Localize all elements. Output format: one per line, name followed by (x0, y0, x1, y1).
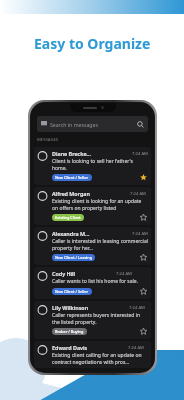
staticText: Search in messages (50, 121, 98, 128)
button[interactable]: Star message (139, 287, 148, 296)
button[interactable]: Search in messages (37, 116, 148, 132)
staticText: MESSAGES (37, 137, 59, 143)
staticText: Cody Hill (52, 270, 76, 277)
button[interactable]: Diane Breckenridge (34, 147, 151, 185)
other: Search (137, 121, 144, 128)
staticText: Diane Breckenridge (52, 150, 92, 157)
staticText: Existing client calling for an update on… (52, 352, 148, 365)
staticText: 7:24 AM (132, 231, 148, 237)
staticText: 7:24 AM (132, 151, 148, 157)
staticText: Broker / Buying (55, 329, 84, 334)
staticText: 7:24 AM (129, 305, 145, 311)
staticText: Caller represents buyers interested in t… (52, 312, 148, 325)
staticText: Lily Wilkinson (52, 304, 89, 311)
staticText: New Client / Seller (55, 289, 89, 294)
staticText: Alfred Morgan (52, 190, 90, 197)
staticText: New Client / Seller (55, 175, 89, 180)
button[interactable]: Lily Wilkinson (34, 301, 151, 339)
staticText: Easy to Organize (34, 34, 151, 53)
button[interactable]: Star message (139, 173, 148, 182)
staticText: Existing Client (55, 215, 81, 220)
staticText: 7:24 AM (128, 345, 144, 351)
staticText: Alexandra Marsh (52, 230, 92, 237)
button[interactable]: Edward Davis (34, 341, 151, 368)
button[interactable]: Star message (139, 253, 148, 262)
button[interactable]: Alfred Morgan (34, 187, 151, 225)
staticText: Edward Davis (52, 344, 88, 351)
staticText: Caller is interested in leasing commerci… (52, 238, 148, 251)
staticText: 7:24 AM (130, 191, 146, 197)
button[interactable]: Star message (139, 213, 148, 222)
staticText: 7:24 AM (116, 271, 132, 277)
staticText: Client is looking to sell her father's h… (52, 158, 148, 171)
staticText: Existing client is looking for an update… (52, 198, 148, 211)
button[interactable]: Alexandra Marsh (34, 227, 151, 265)
button[interactable]: Cody Hill (34, 267, 151, 299)
button[interactable]: Star message (139, 327, 148, 336)
staticText: New Client / Leasing (55, 255, 92, 260)
staticText: Caller wants to list his home for sale. (52, 278, 139, 285)
